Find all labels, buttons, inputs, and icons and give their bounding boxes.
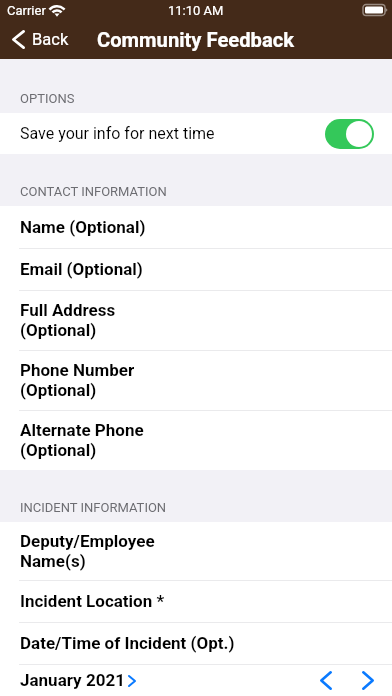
staticText: 11:10 AM: [168, 3, 224, 18]
button[interactable]: Deputy/Employee: [0, 522, 392, 580]
staticText: (Optional): [20, 440, 97, 460]
button[interactable]: Back: [0, 25, 79, 54]
button[interactable]: Phone Number: [0, 350, 392, 410]
button[interactable]: Save your info for next time toggle: [325, 119, 374, 149]
staticText: (Optional): [20, 320, 97, 340]
staticText: Alternate Phone: [20, 420, 144, 440]
staticText: Name (Optional): [20, 217, 146, 237]
staticText: Deputy/Employee: [20, 531, 155, 551]
staticText: INCIDENT INFORMATION: [20, 500, 167, 515]
button[interactable]: Alternate Phone: [0, 410, 392, 470]
button[interactable]: Full Address: [0, 290, 392, 350]
button[interactable]: Name (Optional): [0, 206, 392, 248]
button[interactable]: Save your info for next time: [0, 113, 392, 154]
staticText: (Optional): [20, 380, 97, 400]
staticText: CONTACT INFORMATION: [20, 184, 167, 199]
staticText: Carrier: [7, 3, 46, 18]
staticText: Incident Location *: [20, 591, 165, 611]
staticText: Save your info for next time: [20, 124, 215, 143]
button[interactable]: Previous month: [309, 665, 343, 696]
staticText: OPTIONS: [20, 91, 75, 106]
button[interactable]: January 2021: [20, 670, 136, 690]
staticText: Phone Number: [20, 360, 135, 380]
staticText: Back: [32, 30, 69, 49]
staticText: Date/Time of Incident (Opt.): [20, 633, 235, 653]
staticText: Email (Optional): [20, 259, 143, 279]
button[interactable]: Date/Time of Incident (Opt.): [0, 622, 392, 664]
staticText: Name(s): [20, 551, 86, 571]
button[interactable]: Incident Location *: [0, 580, 392, 622]
staticText: Community Feedback: [97, 28, 295, 52]
staticText: Full Address: [20, 300, 116, 320]
staticText: January 2021: [20, 670, 125, 690]
button[interactable]: Next month: [351, 665, 385, 696]
button[interactable]: Email (Optional): [0, 248, 392, 290]
